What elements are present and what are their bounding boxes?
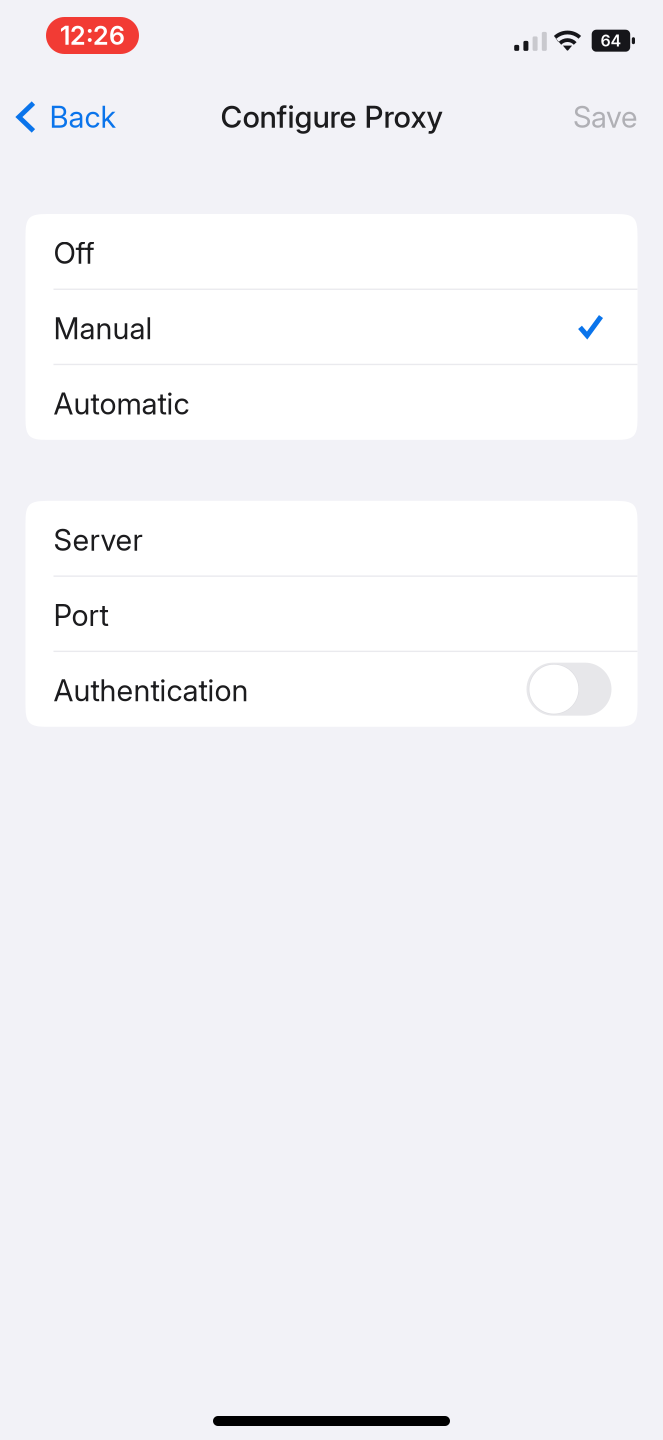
staticText: Save (573, 99, 637, 135)
staticText: 12:26 (60, 20, 125, 51)
staticText: Back (49, 99, 116, 135)
staticText: Authentication (53, 673, 248, 708)
staticText: Server (53, 522, 142, 558)
button[interactable]: Automatic (25, 365, 637, 440)
button[interactable]: Port (25, 576, 637, 651)
staticText: 64 (600, 31, 621, 50)
button[interactable]: Back (0, 85, 130, 141)
button[interactable]: Off (25, 214, 637, 289)
staticText: Automatic (53, 386, 189, 422)
staticText: Port (53, 597, 108, 633)
staticText: Off (53, 235, 94, 271)
staticText: Manual (53, 311, 152, 346)
button[interactable]: Save (557, 85, 663, 141)
button[interactable]: Server (25, 501, 637, 576)
staticText: Configure Proxy (220, 99, 442, 135)
button[interactable]: Off (25, 651, 637, 727)
button[interactable]: Selected (25, 289, 637, 365)
